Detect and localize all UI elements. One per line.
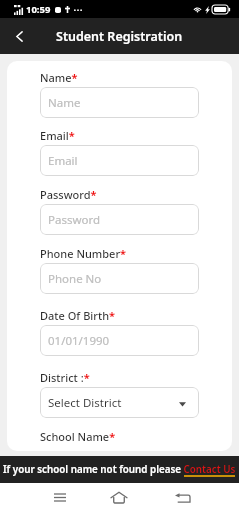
staticText: School Name* <box>40 429 116 444</box>
staticText: Student Registration <box>56 28 183 45</box>
button[interactable]: Email <box>40 145 199 176</box>
staticText: District :* <box>40 370 90 385</box>
button[interactable]: If your school name not found please Con… <box>3 463 236 476</box>
staticText: Email* <box>40 128 75 143</box>
staticText: Name* <box>40 70 78 85</box>
staticText: Email <box>48 153 78 169</box>
button[interactable]: Recents <box>44 483 76 512</box>
staticText: Password <box>48 212 101 228</box>
staticText: Phone No <box>48 271 102 287</box>
staticText: Date Of Birth* <box>40 308 116 323</box>
button[interactable]: Name <box>40 87 199 118</box>
button[interactable]: Password <box>40 204 199 235</box>
button[interactable]: Back <box>6 23 32 49</box>
staticText: Password* <box>40 187 97 202</box>
staticText: 01/01/1990 <box>48 333 110 349</box>
button[interactable]: Phone No <box>40 263 199 294</box>
staticText: Phone Number* <box>40 246 126 261</box>
staticText: Select District <box>48 395 122 411</box>
staticText: Name <box>48 95 81 111</box>
button[interactable]: Back <box>166 483 198 512</box>
button[interactable]: 01/01/1990 <box>40 325 199 356</box>
button[interactable]: Home <box>103 483 135 512</box>
staticText: 10:59 <box>26 3 51 16</box>
button[interactable]: Select District <box>40 387 199 418</box>
